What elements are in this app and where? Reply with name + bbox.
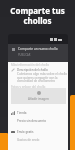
staticText: Más información del chollo [11,63,50,67]
staticText: Tienda [17,111,27,115]
staticText: Precio sin descuento [17,119,47,123]
staticText: Comparte tus chollos [0,5,75,27]
staticText: Cuéntanos algo más sobre el chollo que q… [17,72,68,82]
staticText: Envío gratis [17,130,34,134]
staticText: PUBLICAR [18,53,31,57]
staticText: Gastos de envío [17,138,40,142]
staticText: Descripción del chollo [17,68,48,72]
staticText: Fotos y enlace del chollo [11,85,46,89]
staticText: Comparte un nuevo chollo [18,47,58,51]
staticText: Añadir imagen [28,97,49,101]
